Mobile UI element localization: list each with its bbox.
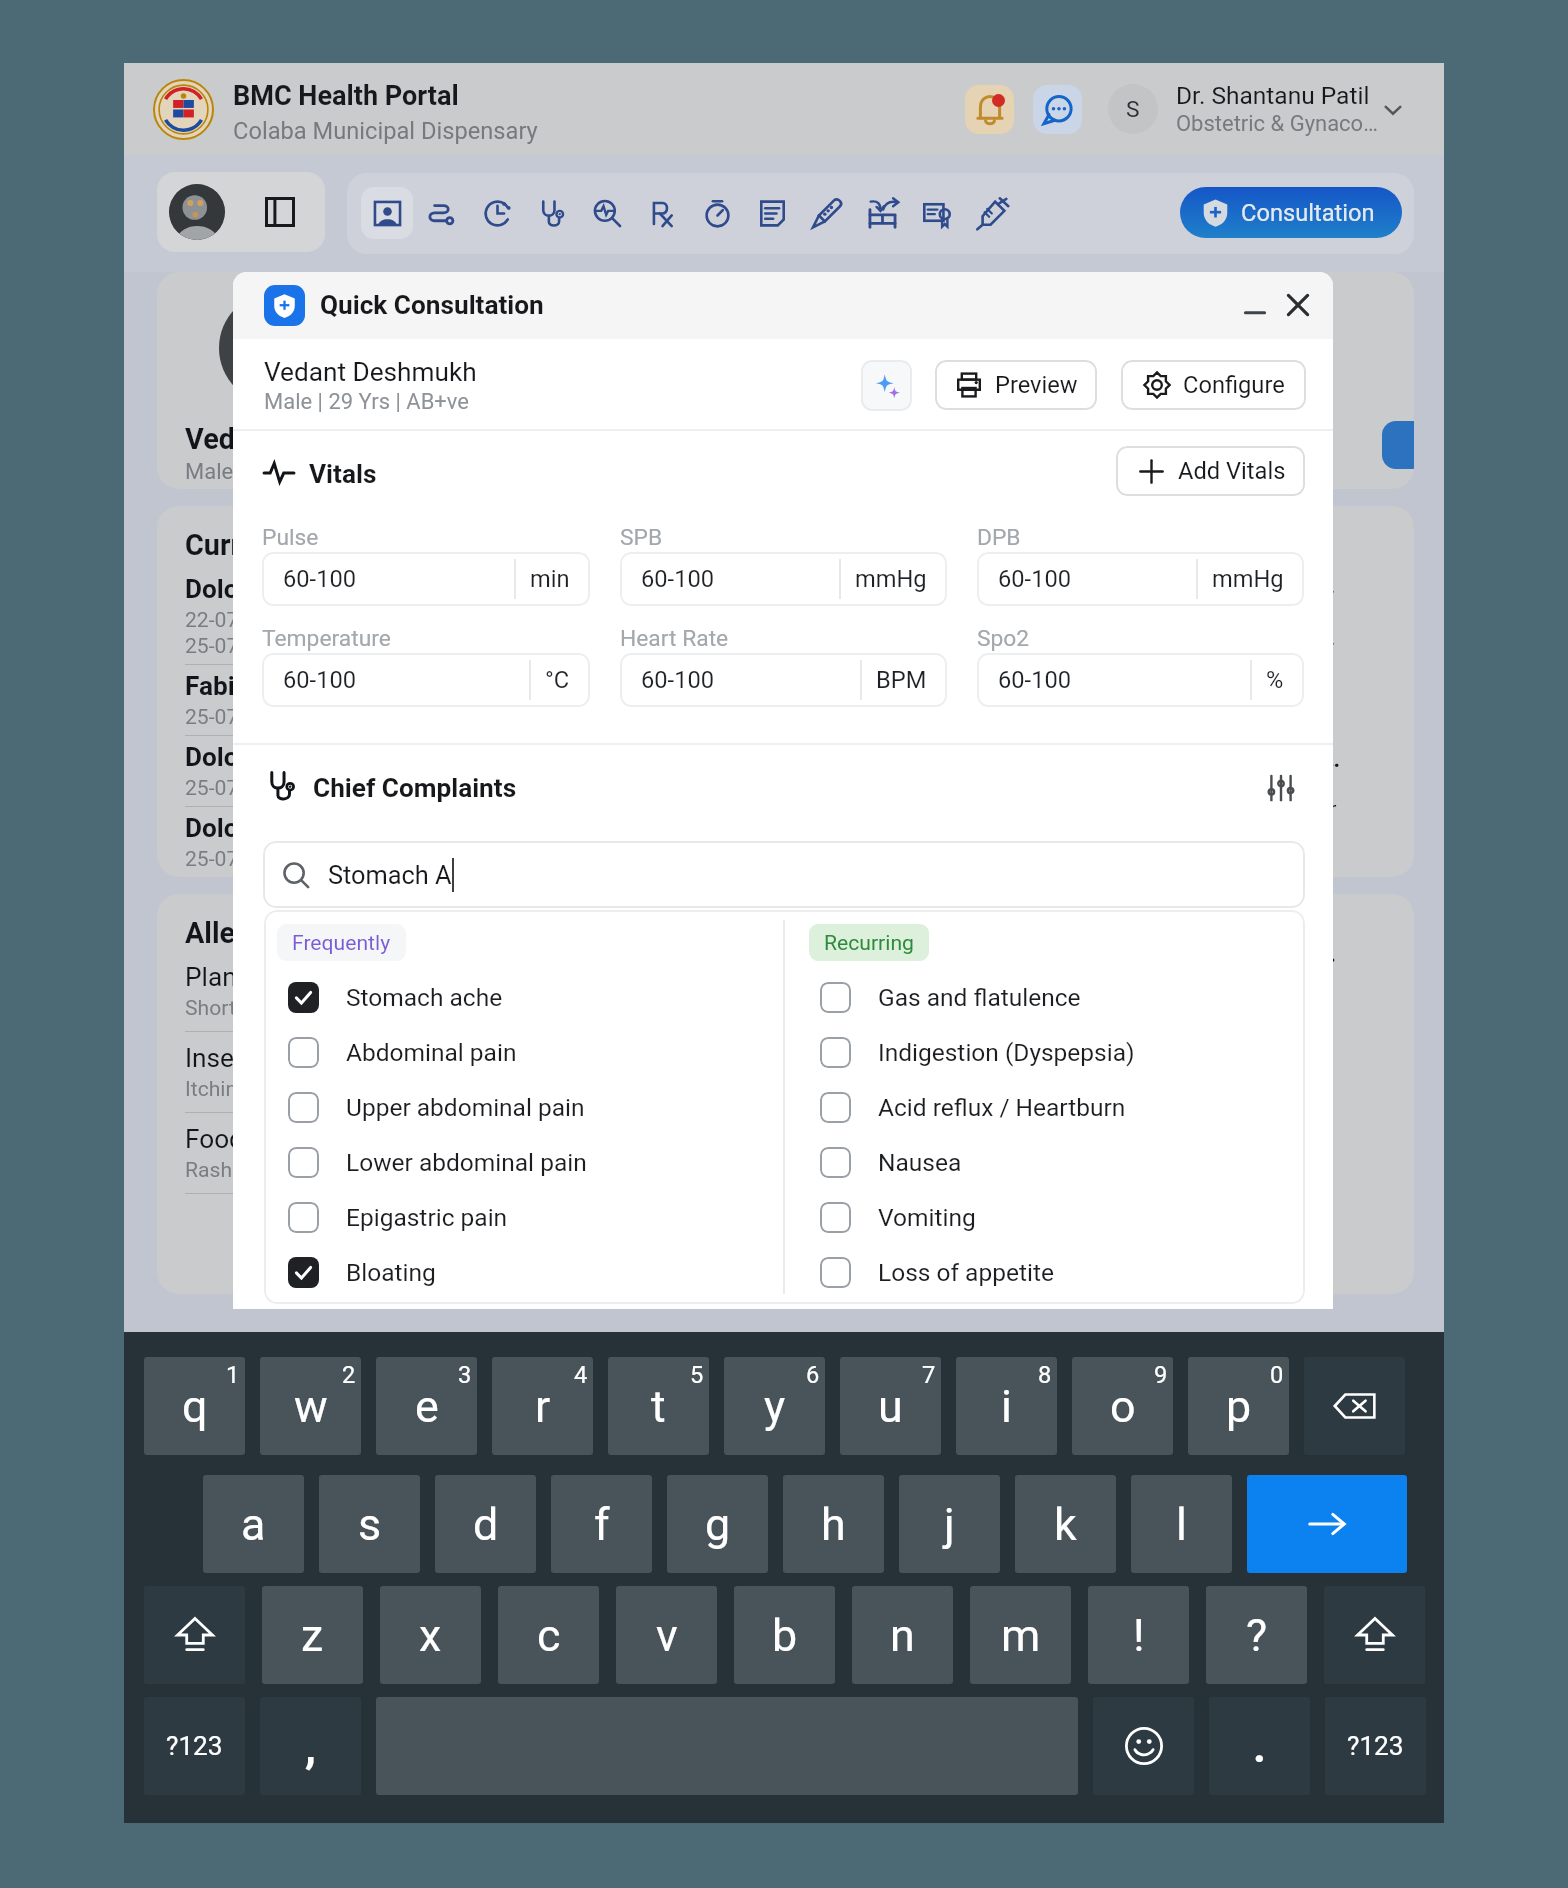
staticText: Food <box>185 1124 244 1155</box>
button[interactable] <box>820 1147 851 1178</box>
button[interactable]: y <box>724 1357 825 1455</box>
button[interactable]: v <box>616 1586 717 1684</box>
button[interactable]: Preview <box>935 360 1097 410</box>
button[interactable]: k <box>1015 1475 1116 1573</box>
button[interactable]: r <box>492 1357 593 1455</box>
button[interactable]: , <box>260 1697 361 1795</box>
button[interactable]: Upper abdominal pain <box>288 1086 768 1128</box>
button[interactable]: n <box>852 1586 953 1684</box>
button[interactable]: m <box>970 1586 1071 1684</box>
button[interactable]: 60-100 <box>620 552 947 606</box>
button[interactable]: Abdominal pain <box>288 1031 768 1073</box>
button[interactable]: Emoji <box>1093 1697 1194 1795</box>
button[interactable]: 60-100 <box>977 653 1304 707</box>
button[interactable]: Temperature <box>801 187 853 239</box>
button[interactable]: Lower abdominal pain <box>288 1141 768 1183</box>
button[interactable]: Stomach ache <box>288 976 768 1018</box>
button[interactable]: Gas and flatulence <box>820 976 1290 1018</box>
button[interactable]: S <box>1104 77 1404 141</box>
button[interactable]: Toggle sidebar <box>261 193 299 231</box>
button[interactable]: Shift <box>1324 1586 1425 1684</box>
button[interactable]: b <box>734 1586 835 1684</box>
button[interactable]: Vomiting <box>820 1196 1290 1238</box>
button[interactable]: ?123 <box>1325 1697 1426 1795</box>
button[interactable]: p <box>1188 1357 1289 1455</box>
button[interactable]: Vaccination <box>966 187 1018 239</box>
button[interactable]: z <box>262 1586 363 1684</box>
button[interactable]: 60-100 <box>977 552 1304 606</box>
button[interactable]: Certificate <box>911 187 963 239</box>
button[interactable] <box>288 1147 319 1178</box>
button[interactable]: Admission <box>856 187 908 239</box>
button[interactable]: t <box>608 1357 709 1455</box>
button[interactable]: h <box>783 1475 884 1573</box>
button[interactable]: Messages <box>1033 85 1082 134</box>
button[interactable]: ? <box>1206 1586 1307 1684</box>
button[interactable] <box>288 1037 319 1068</box>
staticText: BPM <box>876 666 927 694</box>
button[interactable] <box>820 982 851 1013</box>
button[interactable]: 60-100 <box>262 552 590 606</box>
button[interactable] <box>820 1257 851 1288</box>
button[interactable]: e <box>376 1357 477 1455</box>
button[interactable]: l <box>1131 1475 1232 1573</box>
button[interactable]: Timer <box>691 187 743 239</box>
button[interactable]: Notes <box>746 187 798 239</box>
button[interactable]: . <box>1209 1697 1310 1795</box>
button[interactable]: o <box>1072 1357 1173 1455</box>
button[interactable]: Loss of appetite <box>820 1251 1290 1293</box>
button[interactable]: Enter <box>1247 1475 1407 1573</box>
button[interactable]: Epigastric pain <box>288 1196 768 1238</box>
button[interactable]: Stomach A <box>263 841 1305 908</box>
button[interactable]: Add Vitals <box>1116 446 1305 496</box>
button[interactable]: Backspace <box>1304 1357 1405 1455</box>
staticText: ?123 <box>1347 1731 1404 1762</box>
button[interactable]: Examination <box>526 187 578 239</box>
button[interactable]: Diagnosis <box>581 187 633 239</box>
button[interactable] <box>288 1092 319 1123</box>
button[interactable]: Toggle sidebar <box>157 172 325 252</box>
button[interactable]: j <box>899 1475 1000 1573</box>
button[interactable]: g <box>667 1475 768 1573</box>
button[interactable]: q <box>144 1357 245 1455</box>
button[interactable] <box>288 982 319 1013</box>
staticText: Chief Complaints <box>313 773 517 804</box>
button[interactable]: s <box>319 1475 420 1573</box>
button[interactable]: Prescription <box>636 187 688 239</box>
button[interactable]: ?123 <box>144 1697 245 1795</box>
button[interactable]: 60-100 <box>262 653 590 707</box>
button[interactable]: w <box>260 1357 361 1455</box>
staticText: a <box>241 1498 266 1550</box>
button[interactable]: f <box>551 1475 652 1573</box>
button[interactable]: Close <box>1276 283 1320 327</box>
button[interactable] <box>288 1257 319 1288</box>
button[interactable]: Bloating <box>288 1251 768 1293</box>
button[interactable]: ! <box>1088 1586 1189 1684</box>
button[interactable]: c <box>498 1586 599 1684</box>
button[interactable]: Filters <box>1259 766 1303 810</box>
button[interactable] <box>820 1092 851 1123</box>
staticText: h <box>821 1498 846 1550</box>
button[interactable]: Acid reflux / Heartburn <box>820 1086 1290 1128</box>
button[interactable]: d <box>435 1475 536 1573</box>
button[interactable]: x <box>380 1586 481 1684</box>
button[interactable]: Timeline <box>416 187 468 239</box>
button[interactable]: u <box>840 1357 941 1455</box>
button[interactable]: Configure <box>1121 360 1306 410</box>
button[interactable] <box>820 1037 851 1068</box>
button[interactable]: Nausea <box>820 1141 1290 1183</box>
button[interactable]: i <box>956 1357 1057 1455</box>
button[interactable]: 60-100 <box>620 653 947 707</box>
button[interactable]: Notifications <box>965 85 1014 134</box>
button[interactable] <box>288 1202 319 1233</box>
button[interactable]: AI assist <box>861 360 912 411</box>
button[interactable] <box>820 1202 851 1233</box>
button[interactable]: Patient <box>361 187 413 239</box>
button[interactable]: a <box>203 1475 304 1573</box>
button[interactable]: Minimize <box>1233 283 1277 327</box>
button[interactable]: Shift <box>144 1586 245 1684</box>
button[interactable]: History <box>471 187 523 239</box>
button[interactable]: Indigestion (Dyspepsia) <box>820 1031 1290 1073</box>
button[interactable]: Consultation <box>1180 187 1402 238</box>
